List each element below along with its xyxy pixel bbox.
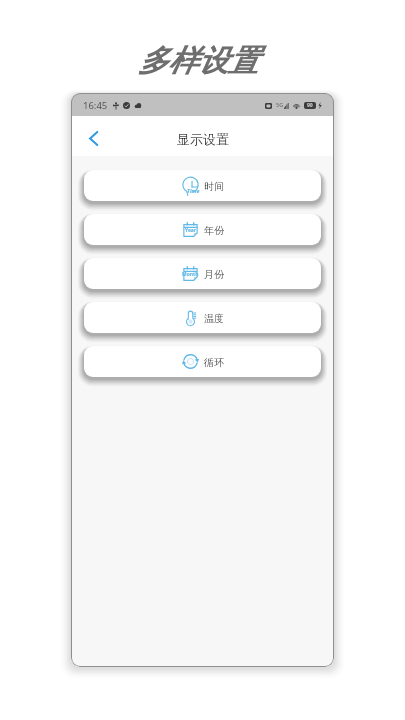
staticText: 循环 bbox=[204, 356, 224, 369]
staticText: Month bbox=[182, 271, 199, 278]
button[interactable]: Month bbox=[84, 258, 321, 289]
staticText: Time bbox=[187, 187, 200, 194]
button[interactable]: Year bbox=[84, 214, 321, 245]
button[interactable]: 温度 bbox=[84, 302, 321, 333]
staticText: 月份 bbox=[204, 268, 224, 281]
button[interactable]: Back bbox=[80, 125, 106, 151]
staticText: 温度 bbox=[204, 312, 224, 325]
staticText: Year bbox=[185, 227, 197, 234]
staticText: 年份 bbox=[204, 224, 224, 237]
staticText: 90 bbox=[307, 102, 313, 109]
staticText: 多样设置 bbox=[138, 42, 258, 80]
staticText: 5G bbox=[276, 101, 284, 108]
staticText: 时间 bbox=[204, 180, 224, 193]
button[interactable]: 循环 bbox=[84, 346, 321, 377]
staticText: 显示设置 bbox=[177, 131, 229, 147]
button[interactable]: Time bbox=[84, 170, 321, 201]
staticText: 16:45 bbox=[83, 99, 108, 112]
